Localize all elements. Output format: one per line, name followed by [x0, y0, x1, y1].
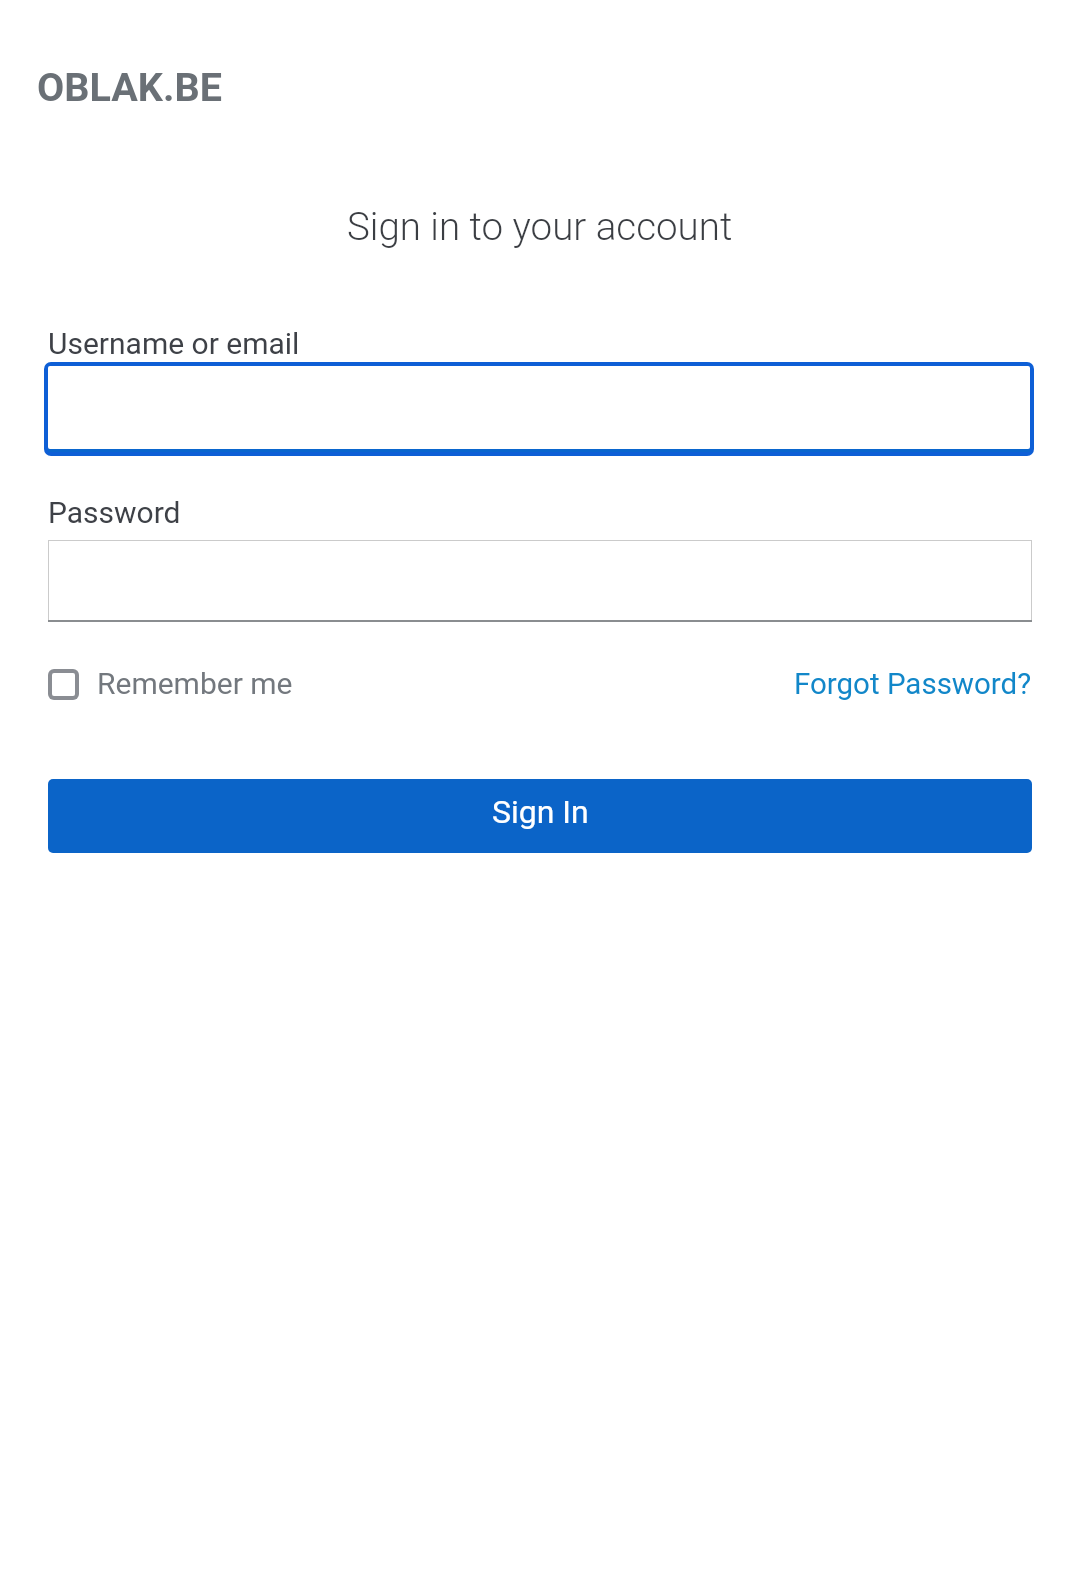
staticText: Sign In — [492, 793, 589, 831]
button[interactable] — [48, 540, 1032, 622]
staticText: Password — [48, 495, 181, 530]
button[interactable] — [48, 779, 1032, 853]
button[interactable] — [44, 362, 1034, 456]
staticText: Remember me — [97, 666, 293, 701]
staticText: Username or email — [48, 326, 300, 361]
button[interactable]: Forgot Password? — [794, 667, 1032, 702]
staticText: OBLAK.BE — [37, 64, 222, 110]
staticText: Sign in to your account — [347, 204, 733, 249]
button[interactable]: Remember me — [48, 666, 293, 701]
